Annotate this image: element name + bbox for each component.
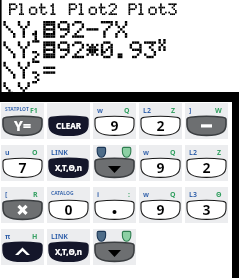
staticText: Z [217, 148, 222, 158]
button[interactable]: 7 [1, 145, 44, 181]
staticText: 0 [64, 200, 73, 219]
button[interactable]: Y= [1, 103, 44, 139]
staticText: W [215, 106, 222, 116]
staticText: STATPLOT [5, 106, 29, 113]
staticText: Q [124, 106, 130, 116]
staticText: L3 [189, 190, 197, 200]
staticText: X,T,Θ,n [55, 246, 82, 257]
staticText: Q [170, 190, 176, 200]
button[interactable]: 0 [47, 187, 90, 223]
staticText: Z [171, 106, 176, 116]
staticText: : [128, 190, 130, 200]
button[interactable]: X,T,Θ,n [47, 229, 90, 265]
staticText: u [5, 148, 10, 158]
button[interactable]: 9 [139, 145, 182, 181]
staticText: 2 [202, 158, 211, 177]
staticText: LINK [51, 148, 68, 158]
staticText: F1 [30, 106, 38, 116]
staticText: 7 [18, 158, 27, 177]
staticText: R [33, 190, 38, 200]
staticText: LINK [51, 232, 68, 242]
staticText: Θ [216, 190, 222, 200]
button[interactable]: Minus [185, 103, 228, 139]
staticText: i [97, 190, 100, 200]
staticText: 9 [156, 158, 165, 177]
button[interactable]: 9 [139, 187, 182, 223]
staticText: 3 [202, 200, 211, 219]
staticText: H [32, 232, 38, 242]
staticText: 2 [156, 116, 165, 135]
staticText: w [97, 106, 103, 116]
staticText: O [32, 148, 38, 158]
staticText: 9 [156, 200, 165, 219]
button[interactable]: 2 [185, 145, 228, 181]
button[interactable]: 9 [93, 103, 136, 139]
button[interactable]: Multiply [1, 187, 44, 223]
staticText: L2 [143, 106, 151, 116]
staticText: π [5, 232, 11, 242]
button[interactable]: Down [93, 229, 136, 265]
staticText: Y= [14, 116, 31, 135]
staticText: X,T,Θ,n [55, 162, 82, 173]
staticText: CLEAR [56, 120, 81, 131]
button[interactable]: Decimal point [93, 187, 136, 223]
button[interactable]: Up [1, 229, 44, 265]
button[interactable]: 3 [185, 187, 228, 223]
staticText: ] [189, 106, 192, 116]
staticText: w [143, 148, 149, 158]
staticText: Q [170, 148, 176, 158]
staticText: [ [5, 190, 8, 200]
staticText: L2 [189, 148, 197, 158]
button[interactable]: 2 [139, 103, 182, 139]
staticText: w [143, 190, 149, 200]
staticText: CATALOG [51, 190, 74, 197]
button[interactable]: X,T,Θ,n [47, 145, 90, 181]
button[interactable]: CLEAR [47, 103, 90, 139]
staticText: 9 [110, 116, 119, 135]
button[interactable]: Down [93, 145, 136, 181]
